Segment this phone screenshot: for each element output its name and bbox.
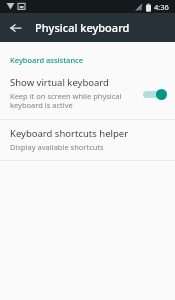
button[interactable]: Back [4,16,28,40]
button[interactable]: Show virtual keyboard toggle [141,86,167,102]
staticText: Show virtual keyboard [10,76,109,89]
staticText: Keyboard assistance [10,55,84,65]
staticText: Display available shortcuts [10,142,104,152]
staticText: Keep it on screen while physical keyboar… [10,91,122,111]
staticText: Physical keyboard [35,20,130,35]
button[interactable]: Show virtual keyboard [0,71,175,119]
staticText: 4:36 [154,2,169,12]
staticText: Keyboard shortcuts helper [10,127,129,140]
button[interactable]: Keyboard shortcuts helper [0,120,175,160]
